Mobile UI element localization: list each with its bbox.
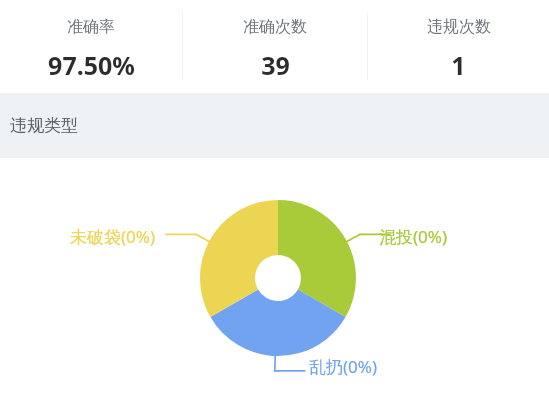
staticText: 1 (451, 48, 466, 82)
staticText: 违规类型 (10, 115, 78, 136)
staticText: 准确率 (67, 17, 115, 37)
button[interactable]: 违规次数 (368, 0, 549, 93)
button[interactable] (8, 158, 549, 397)
staticText: 乱扔(0%) (309, 355, 378, 378)
staticText: 违规次数 (427, 17, 491, 37)
staticText: 混投(0%) (379, 225, 448, 248)
staticText: 未破袋(0%) (70, 225, 156, 248)
staticText: 39 (261, 48, 290, 82)
staticText: 准确次数 (243, 17, 307, 37)
staticText: 97.50% (48, 48, 135, 82)
button[interactable]: 准确次数 (183, 0, 367, 93)
button[interactable]: 准确率 (0, 0, 182, 93)
